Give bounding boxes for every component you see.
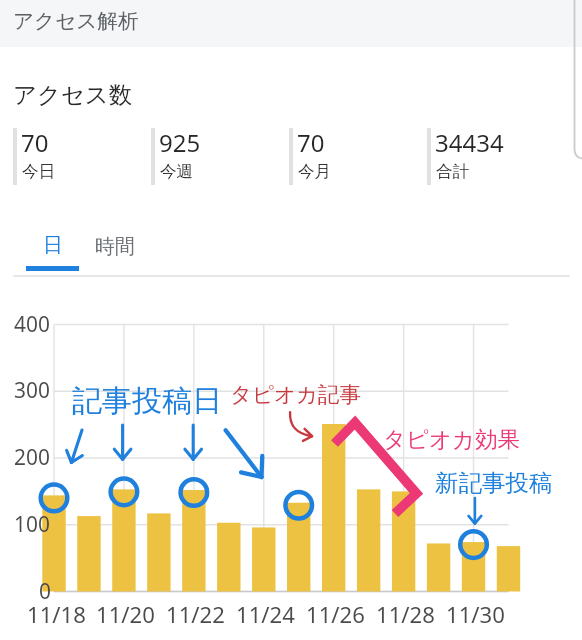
- staticText: 11/30: [446, 599, 505, 629]
- staticText: 11/22: [166, 599, 225, 629]
- button[interactable]: [0, 0, 582, 47]
- button[interactable]: [90, 226, 140, 270]
- button[interactable]: [427, 128, 565, 185]
- staticText: 今日: [22, 161, 56, 182]
- staticText: 34434: [435, 126, 504, 159]
- staticText: 11/24: [236, 599, 295, 629]
- staticText: 記事投稿日: [72, 382, 222, 420]
- staticText: 11/28: [376, 599, 435, 629]
- button[interactable]: [151, 128, 289, 185]
- staticText: 925: [159, 126, 201, 159]
- staticText: 今週: [160, 161, 194, 182]
- staticText: 新記事投稿: [435, 468, 553, 498]
- staticText: タピオカ記事: [230, 381, 362, 408]
- button[interactable]: [13, 128, 151, 185]
- staticText: 11/26: [306, 599, 365, 629]
- staticText: 400: [14, 310, 50, 338]
- staticText: アクセス数: [13, 80, 133, 109]
- staticText: アクセス解析: [13, 8, 139, 34]
- staticText: 100: [14, 510, 50, 538]
- staticText: 200: [14, 443, 50, 471]
- staticText: 11/20: [96, 599, 155, 629]
- button[interactable]: [289, 128, 427, 185]
- staticText: 70: [21, 126, 49, 159]
- staticText: 0: [39, 577, 51, 605]
- staticText: 合計: [436, 161, 470, 182]
- staticText: 今月: [298, 161, 332, 182]
- staticText: 300: [14, 376, 50, 404]
- staticText: 70: [297, 126, 325, 159]
- staticText: タピオカ効果: [383, 425, 521, 453]
- staticText: 11/18: [27, 599, 86, 629]
- staticText: 日: [43, 233, 63, 258]
- button[interactable]: [26, 226, 79, 270]
- staticText: 時間: [95, 234, 135, 259]
